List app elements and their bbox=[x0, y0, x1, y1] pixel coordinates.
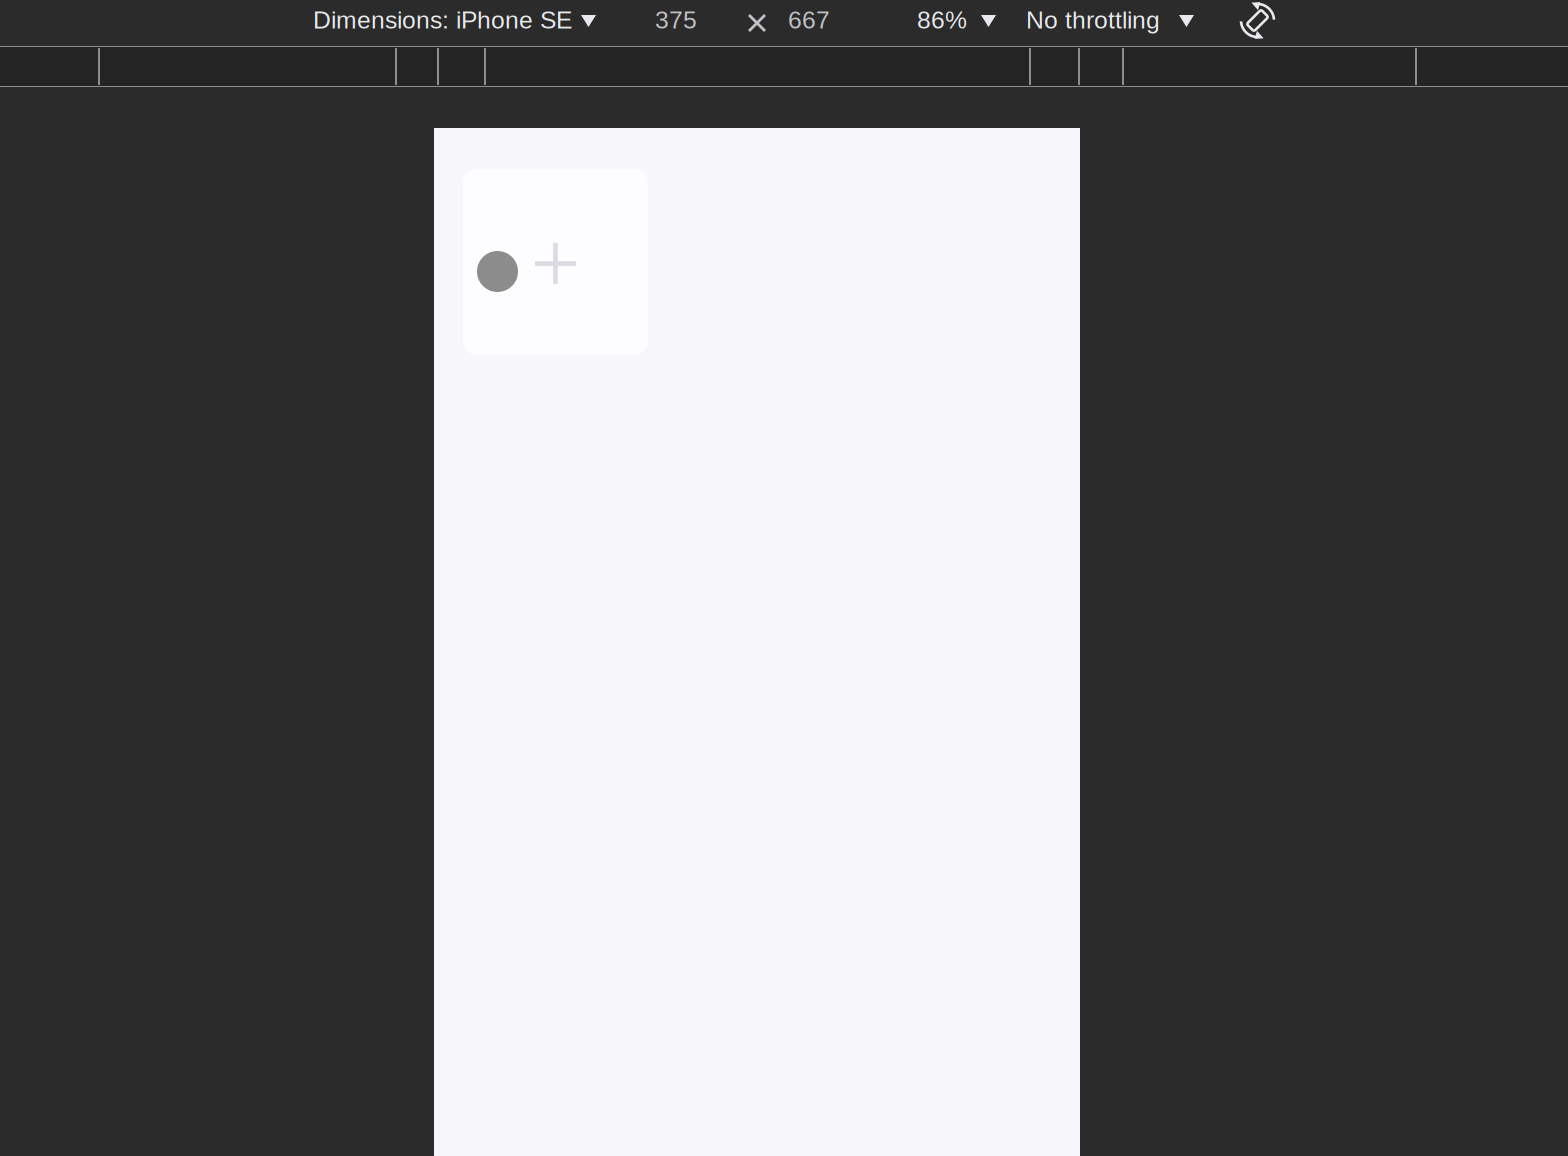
button[interactable]: Dimensions: iPhone SE bbox=[313, 0, 596, 46]
button[interactable]: 375 bbox=[655, 0, 697, 46]
button[interactable]: 86% bbox=[917, 0, 996, 46]
staticText: 375 bbox=[655, 6, 697, 34]
button[interactable]: Add bbox=[463, 169, 648, 355]
staticText: 667 bbox=[788, 6, 830, 34]
staticText: Dimensions: iPhone SE bbox=[313, 6, 572, 34]
staticText: 86% bbox=[917, 6, 967, 34]
button[interactable]: No throttling bbox=[1026, 0, 1194, 46]
staticText: No throttling bbox=[1026, 6, 1160, 34]
button[interactable]: 667 bbox=[788, 0, 830, 46]
button[interactable]: Rotate device orientation bbox=[1238, 0, 1278, 40]
